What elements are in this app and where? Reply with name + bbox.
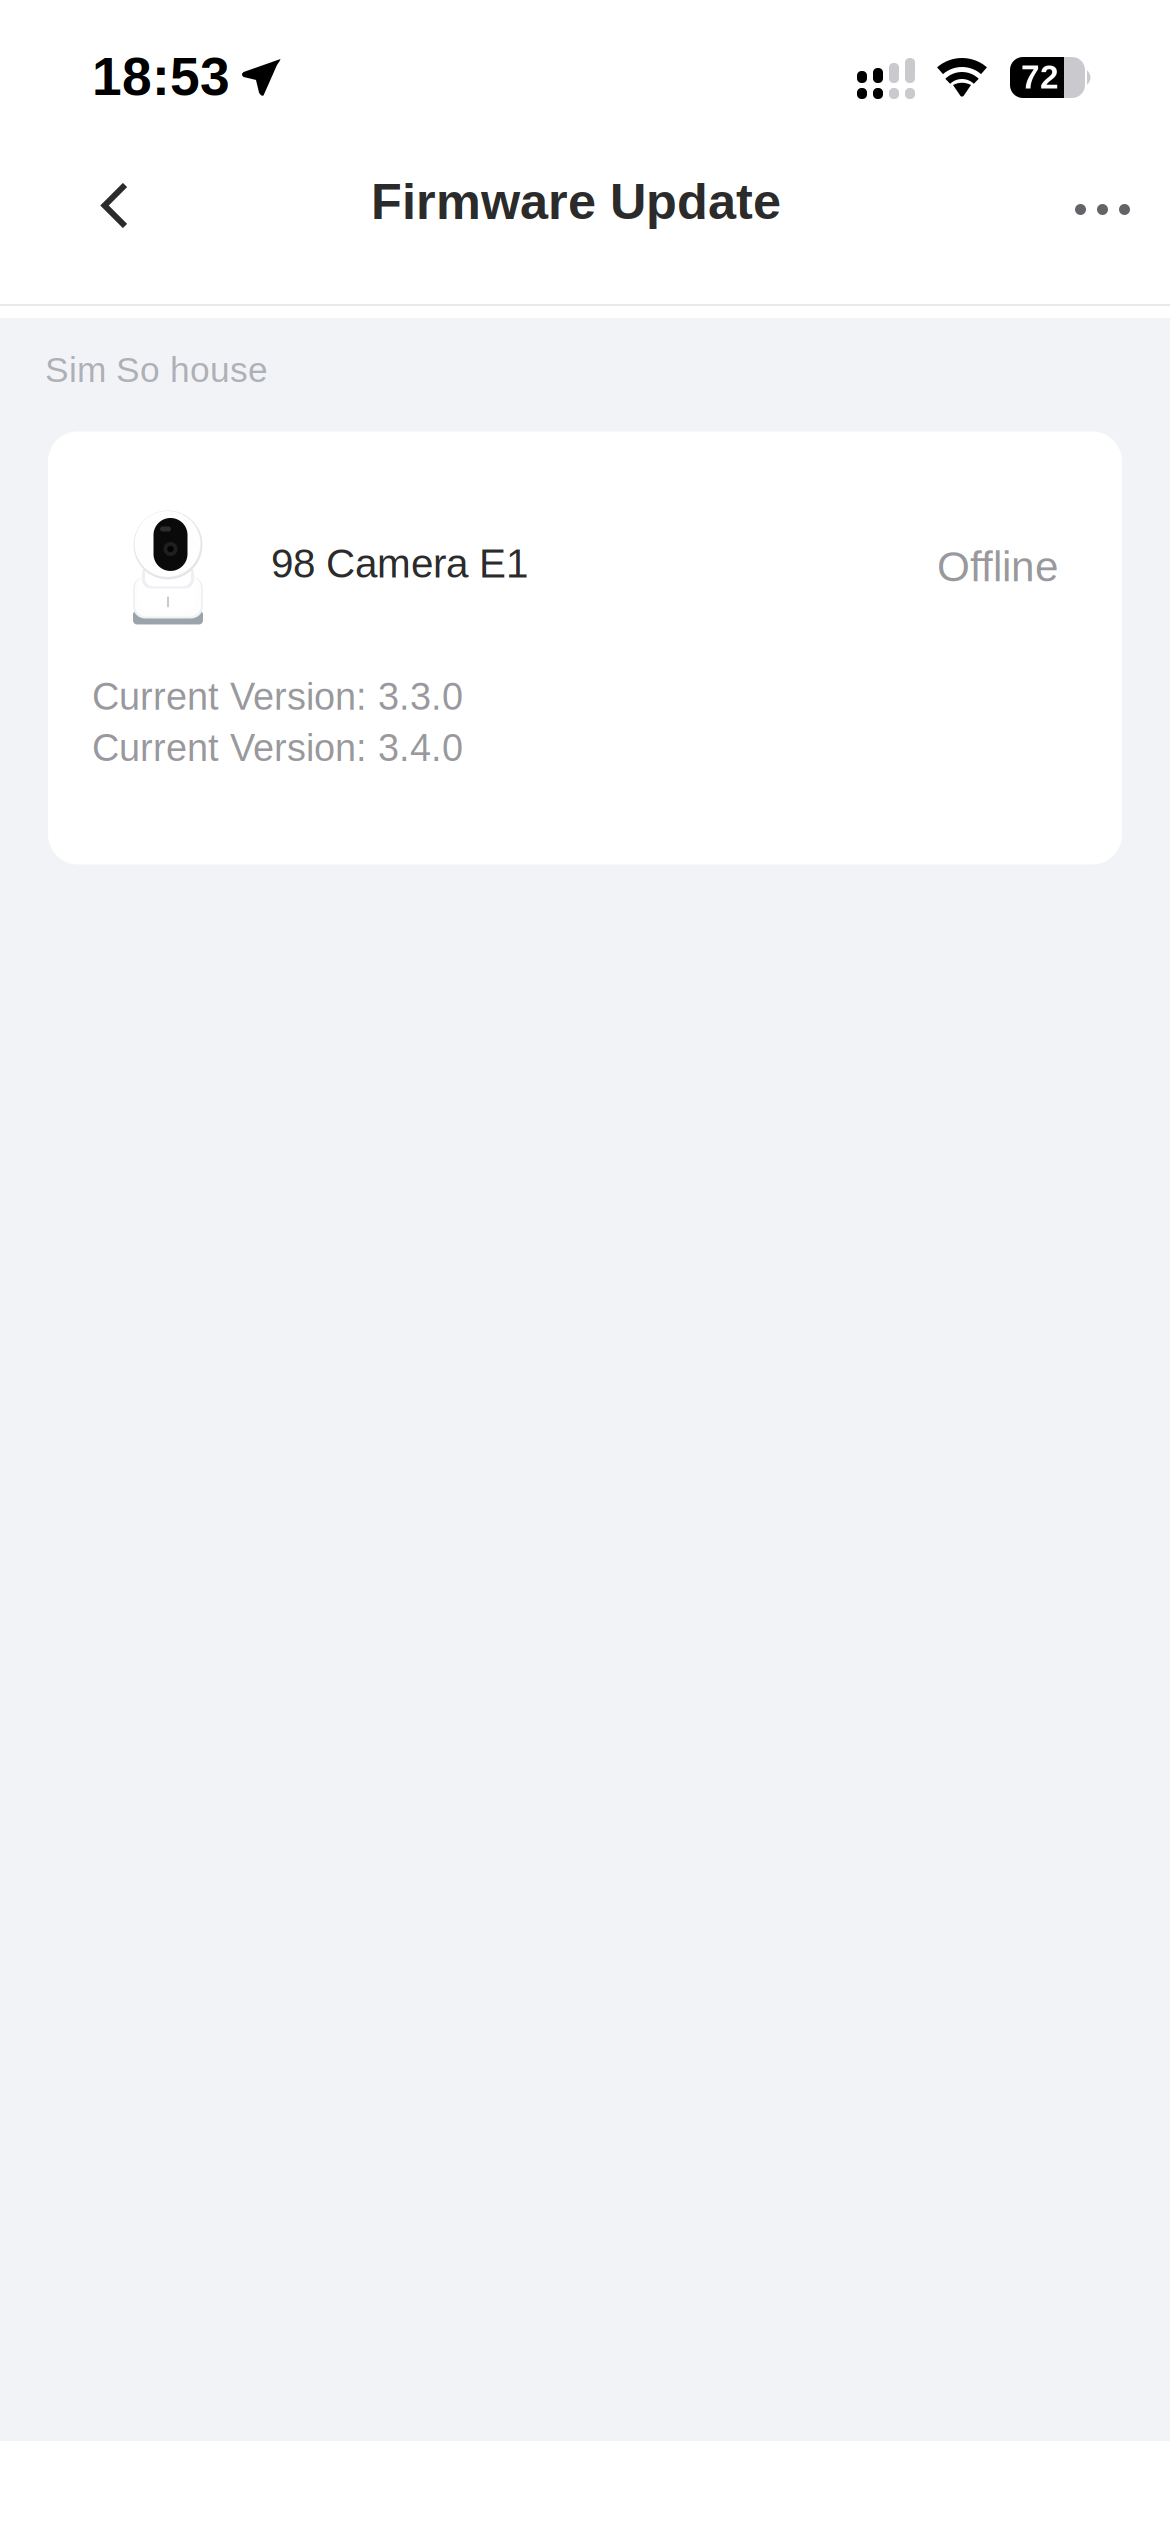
staticText: 72 bbox=[1021, 58, 1059, 96]
button[interactable]: 98 Camera E1 bbox=[48, 431, 1122, 864]
staticText: 98 Camera E1 bbox=[271, 541, 528, 586]
staticText: Current Version: 3.4.0 bbox=[92, 727, 463, 769]
staticText: Sim So house bbox=[45, 350, 268, 389]
staticText: Offline bbox=[937, 543, 1059, 590]
button[interactable]: Back bbox=[101, 148, 193, 260]
button[interactable]: More options bbox=[1034, 148, 1130, 260]
staticText: 18:53 bbox=[92, 47, 230, 106]
staticText: Current Version: 3.3.0 bbox=[92, 675, 463, 718]
staticText: Firmware Update bbox=[371, 173, 781, 230]
